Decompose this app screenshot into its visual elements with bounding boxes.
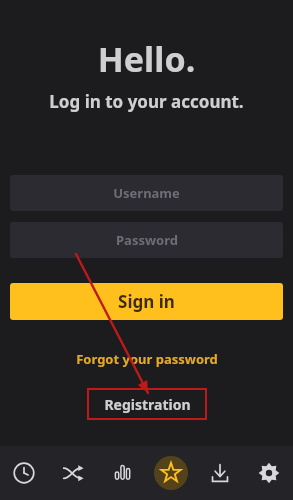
button[interactable]: Registration <box>87 388 207 420</box>
staticText: Hello. <box>0 36 293 82</box>
button[interactable]: Shuffle <box>48 446 97 500</box>
button[interactable]: Username <box>10 175 283 211</box>
button[interactable]: Favourites <box>146 446 195 500</box>
button[interactable]: Settings <box>244 446 293 500</box>
button[interactable]: Recent <box>0 446 48 500</box>
staticText: Log in to your account. <box>0 90 293 113</box>
staticText: Password <box>116 231 178 249</box>
button[interactable]: Sign in <box>10 283 283 320</box>
button[interactable]: Password <box>10 222 283 258</box>
staticText: Sign in <box>118 290 175 313</box>
button[interactable]: Downloads <box>195 446 244 500</box>
button[interactable]: Charts <box>97 446 146 500</box>
staticText: Registration <box>104 395 191 414</box>
staticText: Username <box>113 184 180 202</box>
button[interactable]: Forgot your password <box>68 348 226 370</box>
staticText: Forgot your password <box>76 350 218 368</box>
